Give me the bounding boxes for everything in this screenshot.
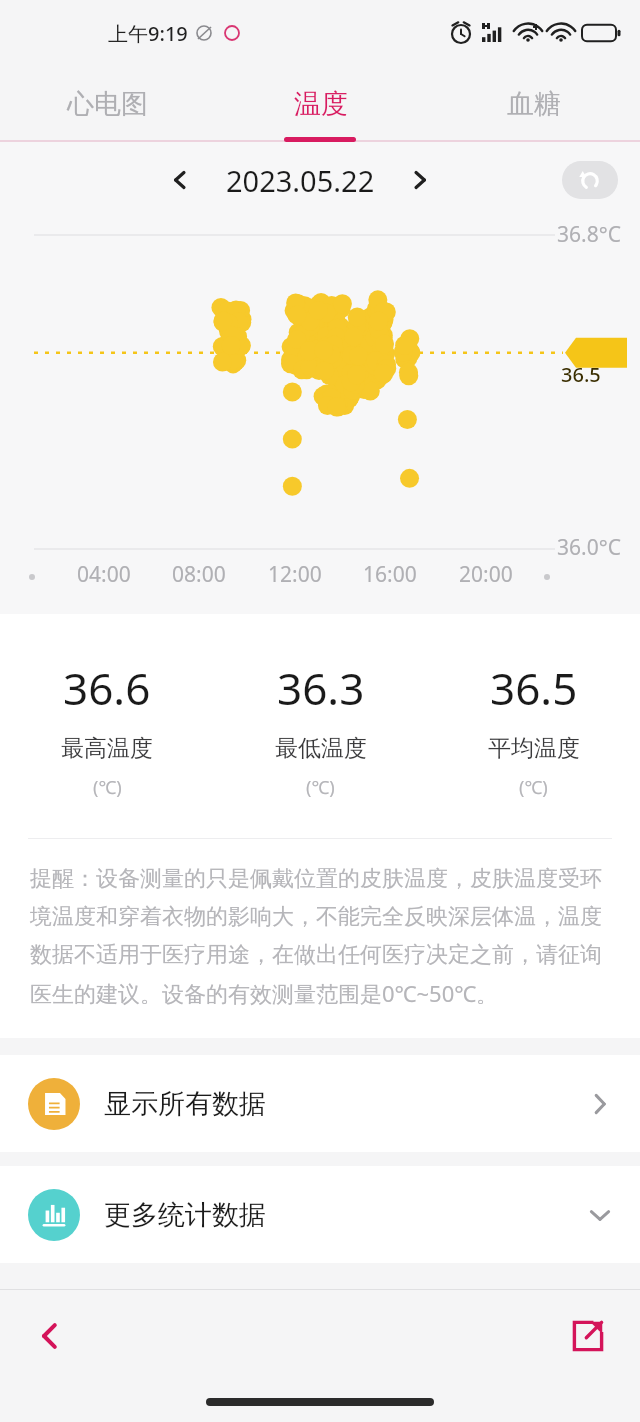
- staticText: 平均温度: [488, 734, 580, 763]
- button[interactable]: 血糖: [427, 66, 640, 142]
- staticText: 36.5: [490, 658, 578, 718]
- staticText: 温度: [294, 87, 348, 121]
- staticText: 最高温度: [61, 734, 153, 763]
- button[interactable]: Next day: [400, 160, 440, 200]
- staticText: 20:00: [459, 560, 513, 589]
- staticText: 2023.05.22: [226, 161, 375, 200]
- button[interactable]: 心电图: [0, 66, 214, 142]
- button[interactable]: Previous day: [160, 160, 200, 200]
- staticText: 显示所有数据: [104, 1087, 266, 1121]
- staticText: 36.0°C: [557, 533, 621, 562]
- button[interactable]: 更多统计数据: [0, 1166, 640, 1263]
- staticText: (℃): [93, 775, 122, 800]
- staticText: 心电图: [67, 87, 148, 121]
- staticText: 36.5: [561, 361, 601, 388]
- staticText: 16:00: [363, 560, 417, 589]
- staticText: 更多统计数据: [104, 1198, 266, 1232]
- staticText: 04:00: [77, 560, 131, 589]
- button[interactable]: Refresh: [562, 161, 618, 199]
- staticText: (℃): [519, 775, 548, 800]
- staticText: 36.8°C: [557, 220, 621, 249]
- staticText: 36.6: [63, 658, 151, 718]
- staticText: 08:00: [172, 560, 226, 589]
- staticText: 36.3: [277, 658, 365, 718]
- button[interactable]: Back: [22, 1308, 78, 1364]
- staticText: 提醒：设备测量的只是佩戴位置的皮肤温度，皮肤温度受环境温度和穿着衣物的影响大，不…: [30, 865, 610, 1008]
- button[interactable]: 温度: [214, 66, 427, 142]
- staticText: 上午9:19: [108, 20, 188, 47]
- staticText: 12:00: [268, 560, 322, 589]
- staticText: (℃): [306, 775, 335, 800]
- staticText: 血糖: [507, 87, 561, 121]
- button[interactable]: 显示所有数据: [0, 1055, 640, 1152]
- button[interactable]: Share: [560, 1308, 616, 1364]
- staticText: 最低温度: [275, 734, 367, 763]
